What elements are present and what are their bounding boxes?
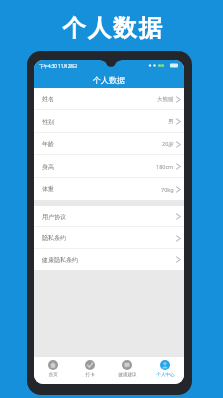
staticText: 个人中心 [156, 372, 175, 378]
staticText: 下午4:30 11月28日 [39, 63, 78, 69]
staticText: 用户协议 [42, 213, 66, 221]
button[interactable]: 年龄 [34, 133, 184, 155]
button[interactable]: 健康建议 [108, 357, 146, 384]
staticText: 打卡 [85, 372, 95, 378]
staticText: 健康建议 [118, 372, 137, 378]
button[interactable]: 姓名 [34, 88, 184, 110]
staticText: 身高 [42, 163, 54, 171]
button[interactable]: 首页 [34, 357, 71, 384]
staticText: 体重 [42, 185, 54, 193]
staticText: 个人数据 [93, 75, 125, 85]
staticText: 20岁 [162, 140, 174, 148]
staticText: 年龄 [42, 140, 54, 148]
staticText: 大熊猫 [157, 96, 174, 103]
button[interactable]: 身高 [34, 155, 184, 178]
button[interactable]: 个人中心 [146, 357, 184, 384]
button[interactable]: 体重 [34, 178, 184, 200]
staticText: 姓名 [42, 95, 54, 103]
staticText: 180cm [156, 163, 174, 170]
staticText: 个人数据 [61, 13, 163, 43]
staticText: 健康隐私条约 [42, 256, 78, 264]
staticText: 男 [168, 118, 174, 125]
button[interactable]: 隐私条约 [34, 227, 184, 249]
staticText: 隐私条约 [42, 234, 66, 242]
button[interactable]: 打卡 [71, 357, 108, 384]
staticText: 性别 [42, 118, 54, 126]
button[interactable]: 健康隐私条约 [34, 249, 184, 270]
staticText: 首页 [48, 372, 58, 378]
staticText: 70kg [161, 186, 174, 193]
button[interactable]: 性别 [34, 110, 184, 133]
button[interactable]: 用户协议 [34, 206, 184, 227]
